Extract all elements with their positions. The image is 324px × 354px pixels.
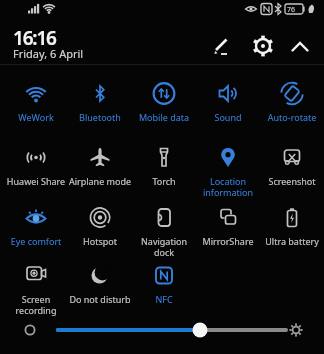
- button[interactable]: [290, 37, 310, 57]
- button[interactable]: MirrorShare: [196, 203, 260, 247]
- button[interactable]: WeWork: [4, 79, 68, 123]
- staticText: MirrorShare: [173, 235, 283, 247]
- staticText: 76: [287, 5, 296, 15]
- button[interactable]: [252, 35, 274, 57]
- button[interactable]: Sound: [196, 79, 260, 123]
- button[interactable]: Torch: [132, 143, 196, 187]
- button[interactable]: Screenshot: [260, 143, 324, 187]
- button[interactable]: Ultra battery: [260, 203, 324, 247]
- button[interactable]: [22, 322, 38, 338]
- button[interactable]: Mobile data: [132, 79, 196, 123]
- button[interactable]: Navigation dock: [132, 203, 196, 259]
- staticText: Screen recording: [0, 293, 91, 317]
- staticText: Screenshot: [237, 175, 324, 187]
- button[interactable]: [212, 35, 234, 57]
- staticText: Location information: [173, 175, 283, 199]
- staticText: Eye comfort: [0, 235, 91, 247]
- button[interactable]: Eye comfort: [4, 203, 68, 247]
- staticText: Ultra battery: [237, 235, 324, 247]
- staticText: Bluetooth: [45, 111, 155, 123]
- button[interactable]: Hotspot: [68, 203, 132, 247]
- staticText: Friday, 6 April: [13, 46, 84, 61]
- staticText: Auto-rotate: [237, 111, 324, 123]
- button[interactable]: [50, 322, 294, 338]
- staticText: Mobile data: [109, 111, 219, 123]
- button[interactable]: Screen recording: [4, 261, 68, 317]
- staticText: Do not disturb: [45, 293, 155, 305]
- staticText: Navigation dock: [109, 235, 219, 259]
- staticText: NFC: [109, 293, 219, 305]
- button[interactable]: Location information: [196, 143, 260, 199]
- button[interactable]: [288, 322, 304, 338]
- button[interactable]: Do not disturb: [68, 261, 132, 305]
- staticText: Huawei Share: [0, 175, 91, 187]
- staticText: WeWork: [0, 111, 91, 123]
- staticText: Torch: [109, 175, 219, 187]
- staticText: Sound: [173, 111, 283, 123]
- staticText: Airplane mode: [45, 175, 155, 187]
- button[interactable]: NFC: [132, 261, 196, 305]
- button[interactable]: Huawei Share: [4, 143, 68, 187]
- button[interactable]: Airplane mode: [68, 143, 132, 187]
- staticText: Hotspot: [45, 235, 155, 247]
- button[interactable]: Auto-rotate: [260, 79, 324, 123]
- staticText: 16:16: [13, 25, 56, 51]
- button[interactable]: Bluetooth: [68, 79, 132, 123]
